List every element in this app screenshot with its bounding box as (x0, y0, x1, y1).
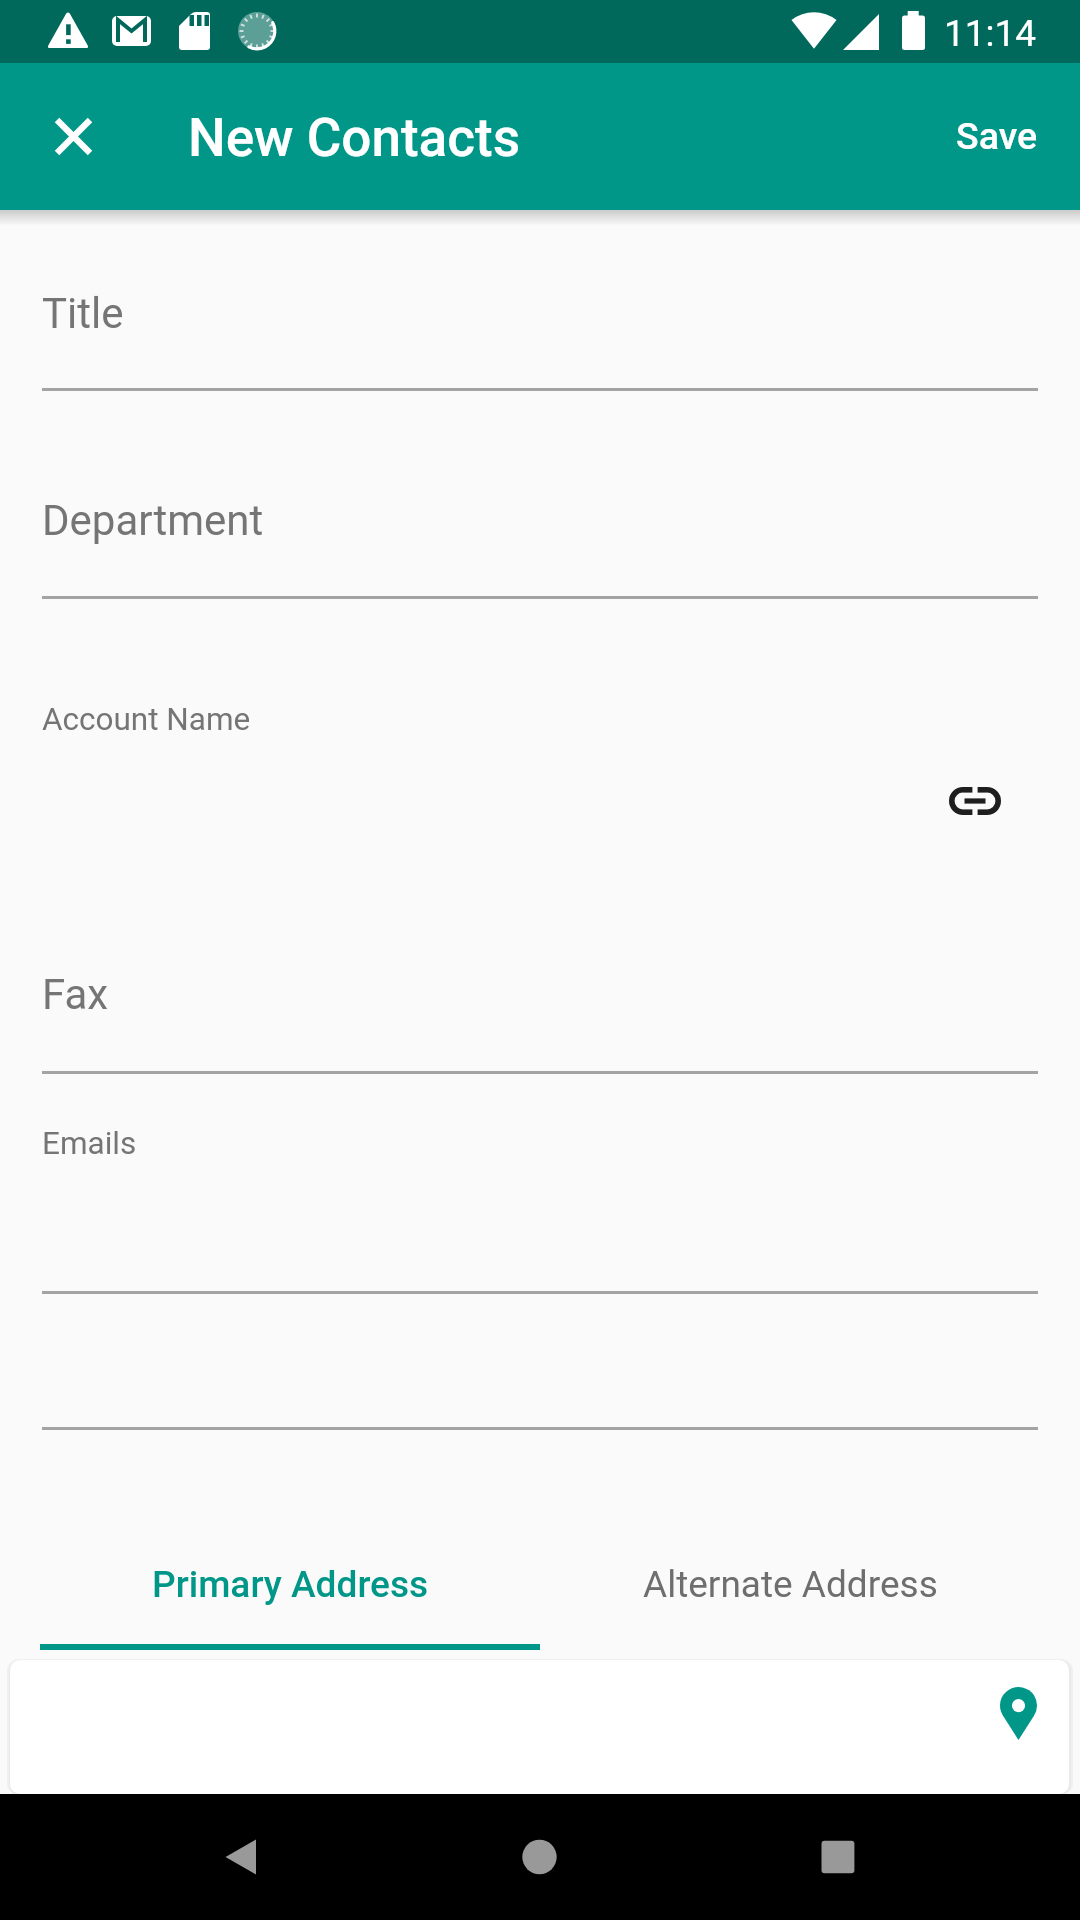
button[interactable]: Department (42, 470, 1038, 598)
staticText: Primary Address (152, 1563, 429, 1606)
button[interactable] (920, 63, 1080, 210)
staticText: Emails (42, 1125, 137, 1162)
button[interactable]: Account Name (42, 690, 1038, 750)
staticText: Save (956, 114, 1038, 158)
button[interactable]: Close (37, 100, 110, 173)
button[interactable]: Pick location (968, 1673, 1068, 1753)
staticText: Department (42, 496, 264, 545)
staticText: Title (42, 289, 124, 338)
button[interactable]: Fax (42, 944, 1038, 1072)
button[interactable]: Link account (933, 765, 1017, 837)
button[interactable]: Primary Address (40, 1520, 540, 1650)
button[interactable]: Emails (42, 1114, 1038, 1294)
staticText: Account Name (42, 701, 251, 738)
button[interactable]: Title (42, 262, 1038, 390)
staticText: Alternate Address (643, 1563, 938, 1606)
button[interactable] (42, 1300, 1038, 1430)
button[interactable]: Alternate Address (540, 1520, 1040, 1650)
staticText: Fax (42, 970, 109, 1019)
staticText: New Contacts (188, 107, 521, 169)
staticText: 11:14 (944, 12, 1037, 55)
button[interactable]: Pick location (10, 1660, 1069, 1794)
